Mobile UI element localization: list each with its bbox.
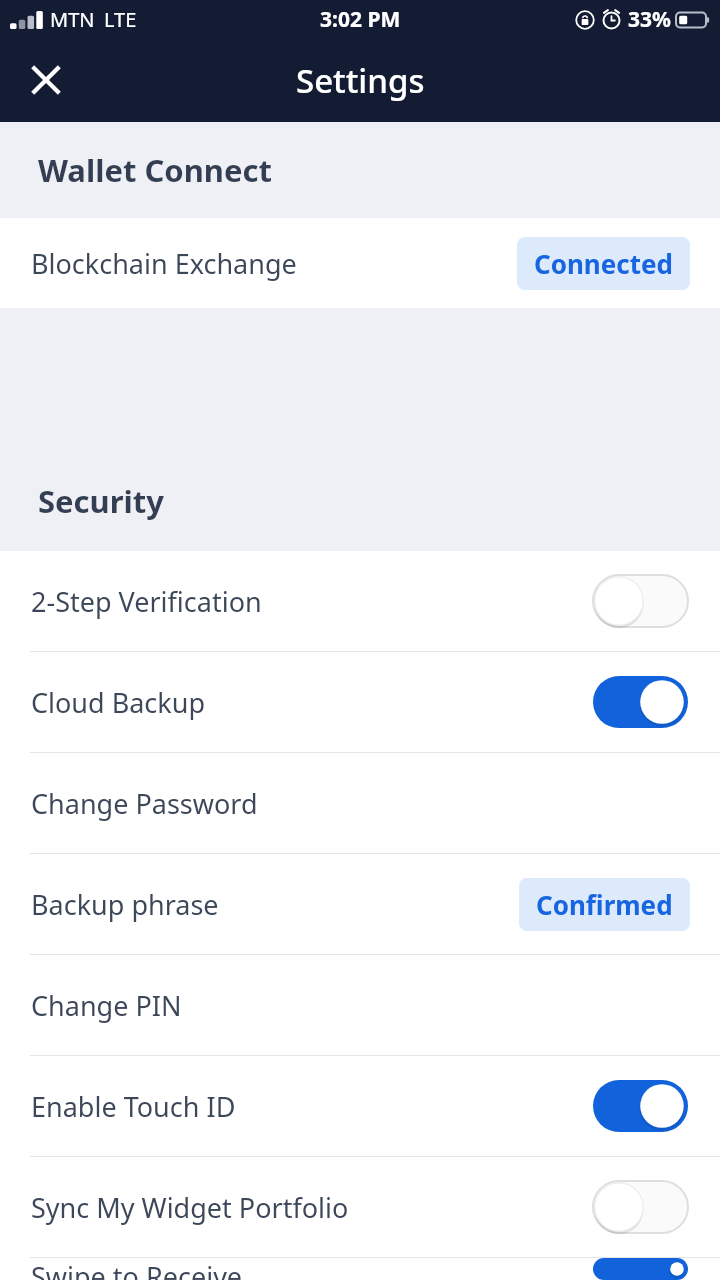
button[interactable]: Blockchain Exchange — [0, 218, 720, 308]
staticText: Wallet Connect — [38, 149, 272, 191]
staticText: Sync My Widget Portfolio — [31, 1189, 349, 1226]
staticText: Blockchain Exchange — [31, 245, 297, 282]
staticText: MTN — [50, 6, 95, 33]
staticText: 3:02 PM — [320, 5, 401, 34]
staticText: 2-Step Verification — [31, 583, 262, 620]
button[interactable]: Change PIN — [0, 955, 720, 1055]
staticText: Enable Touch ID — [31, 1088, 236, 1125]
staticText: Settings — [296, 58, 425, 103]
staticText: 33% — [628, 5, 671, 34]
button[interactable]: Enable Touch ID — [0, 1056, 720, 1156]
staticText: Swipe to Receive — [31, 1258, 243, 1280]
button[interactable]: 2-Step Verification — [0, 551, 720, 651]
staticText: Backup phrase — [31, 886, 219, 923]
staticText: Change PIN — [31, 987, 182, 1024]
button[interactable]: Change Password — [0, 753, 720, 853]
button[interactable]: Swipe to Receive — [0, 1258, 720, 1280]
button[interactable]: Toggle on — [593, 676, 688, 728]
button[interactable]: Backup phrase — [0, 854, 720, 954]
staticText: Connected — [534, 246, 673, 281]
button[interactable]: Toggle on — [593, 1080, 688, 1132]
button[interactable]: Toggle off — [593, 575, 688, 627]
staticText: Confirmed — [536, 887, 673, 922]
staticText: Change Password — [31, 785, 258, 822]
button[interactable]: Cloud Backup — [0, 652, 720, 752]
staticText: LTE — [104, 6, 137, 33]
button[interactable]: Close — [14, 48, 78, 112]
button[interactable]: Toggle on — [593, 1258, 688, 1280]
staticText: Security — [38, 480, 165, 522]
button[interactable]: Sync My Widget Portfolio — [0, 1157, 720, 1257]
staticText: Cloud Backup — [31, 684, 206, 721]
button[interactable]: Toggle off — [593, 1181, 688, 1233]
